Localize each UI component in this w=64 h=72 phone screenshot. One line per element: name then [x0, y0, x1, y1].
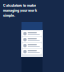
button[interactable] — [21, 31, 43, 36]
staticText: Calculators to make — [3, 3, 36, 8]
button[interactable] — [21, 49, 43, 54]
button[interactable] — [21, 37, 43, 42]
staticText: simple. — [3, 13, 15, 18]
button[interactable] — [21, 43, 43, 48]
staticText: managing your work — [3, 8, 37, 13]
